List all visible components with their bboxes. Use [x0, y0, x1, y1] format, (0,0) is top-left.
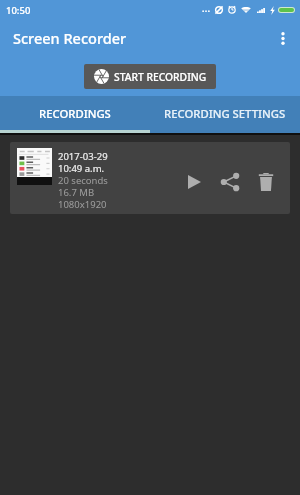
button[interactable]: Share	[212, 164, 248, 200]
staticText: 20 seconds	[58, 174, 108, 186]
button[interactable]: More options	[266, 21, 300, 55]
button[interactable]: START RECORDING	[84, 64, 216, 89]
staticText: 10:50	[6, 4, 31, 17]
button[interactable]: RECORDING SETTINGS	[150, 96, 300, 130]
button[interactable]: Play	[176, 164, 212, 200]
button[interactable]: RECORDINGS	[0, 96, 150, 130]
staticText: RECORDING SETTINGS	[164, 106, 286, 121]
staticText: 10:49 a.m.	[58, 162, 105, 174]
staticText: 2017-03-29	[58, 150, 108, 162]
staticText: START RECORDING	[114, 70, 206, 84]
button[interactable]: 2017-03-29	[10, 142, 290, 214]
staticText: 1080x1920	[58, 198, 107, 210]
staticText: Screen Recorder	[13, 28, 127, 48]
button[interactable]: Delete	[248, 164, 284, 200]
staticText: RECORDINGS	[39, 106, 111, 121]
staticText: 16.7 MB	[58, 186, 95, 198]
